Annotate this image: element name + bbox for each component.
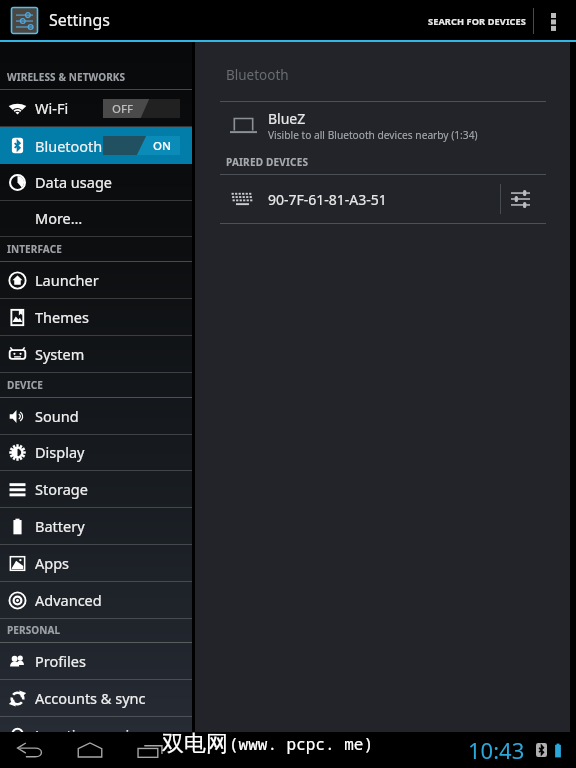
staticText: Wi-Fi bbox=[35, 98, 69, 118]
button[interactable]: Settings app icon bbox=[7, 3, 41, 37]
button[interactable]: Device settings bbox=[501, 175, 570, 223]
staticText: Display bbox=[35, 442, 85, 462]
button[interactable]: Display bbox=[0, 434, 192, 471]
staticText: Location services bbox=[35, 725, 152, 745]
button[interactable]: Sound bbox=[0, 398, 192, 435]
staticText: INTERFACE bbox=[7, 242, 62, 256]
button[interactable]: More options bbox=[534, 1, 572, 41]
button[interactable]: Back bbox=[8, 732, 52, 768]
staticText: 90-7F-61-81-A3-51 bbox=[268, 190, 387, 209]
button[interactable]: Themes bbox=[0, 299, 192, 336]
button[interactable]: BlueZ bbox=[195, 102, 570, 148]
staticText: Advanced bbox=[35, 590, 102, 610]
button[interactable]: System bbox=[0, 336, 192, 373]
staticText: Sound bbox=[35, 406, 79, 426]
staticText: Bluetooth bbox=[226, 66, 289, 84]
button[interactable]: Advanced bbox=[0, 582, 192, 619]
staticText: BlueZ bbox=[268, 109, 306, 128]
staticText: WIRELESS & NETWORKS bbox=[7, 70, 126, 84]
button[interactable]: Home bbox=[68, 732, 112, 768]
button[interactable]: OFF bbox=[103, 99, 180, 118]
button[interactable]: Bluetooth bbox=[0, 127, 192, 164]
staticText: Profiles bbox=[35, 651, 86, 671]
staticText: OFF bbox=[112, 101, 134, 117]
staticText: Accounts & sync bbox=[35, 688, 146, 708]
staticText: 10:43 bbox=[468, 735, 525, 765]
staticText: System bbox=[35, 344, 85, 364]
staticText: More… bbox=[35, 208, 83, 228]
staticText: Visible to all Bluetooth devices nearby … bbox=[268, 128, 478, 142]
staticText: Launcher bbox=[35, 270, 99, 290]
staticText: SEARCH FOR DEVICES bbox=[428, 15, 526, 28]
staticText: DEVICE bbox=[7, 378, 43, 392]
button[interactable]: Location services bbox=[0, 717, 192, 754]
staticText: PAIRED DEVICES bbox=[226, 155, 309, 169]
staticText: Apps bbox=[35, 553, 70, 573]
button[interactable]: More… bbox=[0, 200, 192, 237]
button[interactable]: Apps bbox=[0, 545, 192, 582]
button[interactable]: Data usage bbox=[0, 164, 192, 201]
button[interactable]: Profiles bbox=[0, 643, 192, 680]
staticText: ON bbox=[153, 138, 171, 154]
button[interactable]: Storage bbox=[0, 471, 192, 508]
staticText: Battery bbox=[35, 516, 85, 536]
staticText: Bluetooth bbox=[35, 136, 103, 156]
staticText: (www. pcpc. me) bbox=[229, 733, 374, 755]
button[interactable]: Battery bbox=[0, 508, 192, 545]
staticText: Themes bbox=[35, 307, 89, 327]
staticText: Data usage bbox=[35, 172, 112, 192]
button[interactable]: Recent apps bbox=[128, 732, 172, 768]
staticText: PERSONAL bbox=[7, 623, 61, 637]
staticText: Storage bbox=[35, 479, 88, 499]
staticText: Settings bbox=[49, 9, 110, 31]
staticText: 双电网 bbox=[162, 730, 228, 758]
button[interactable]: Wi-Fi bbox=[0, 90, 192, 127]
button[interactable]: SEARCH FOR DEVICES bbox=[424, 1, 530, 41]
button[interactable]: Launcher bbox=[0, 262, 192, 299]
button[interactable]: ON bbox=[103, 136, 180, 155]
button[interactable]: Accounts & sync bbox=[0, 680, 192, 717]
button[interactable]: 90-7F-61-81-A3-51 bbox=[195, 175, 500, 223]
